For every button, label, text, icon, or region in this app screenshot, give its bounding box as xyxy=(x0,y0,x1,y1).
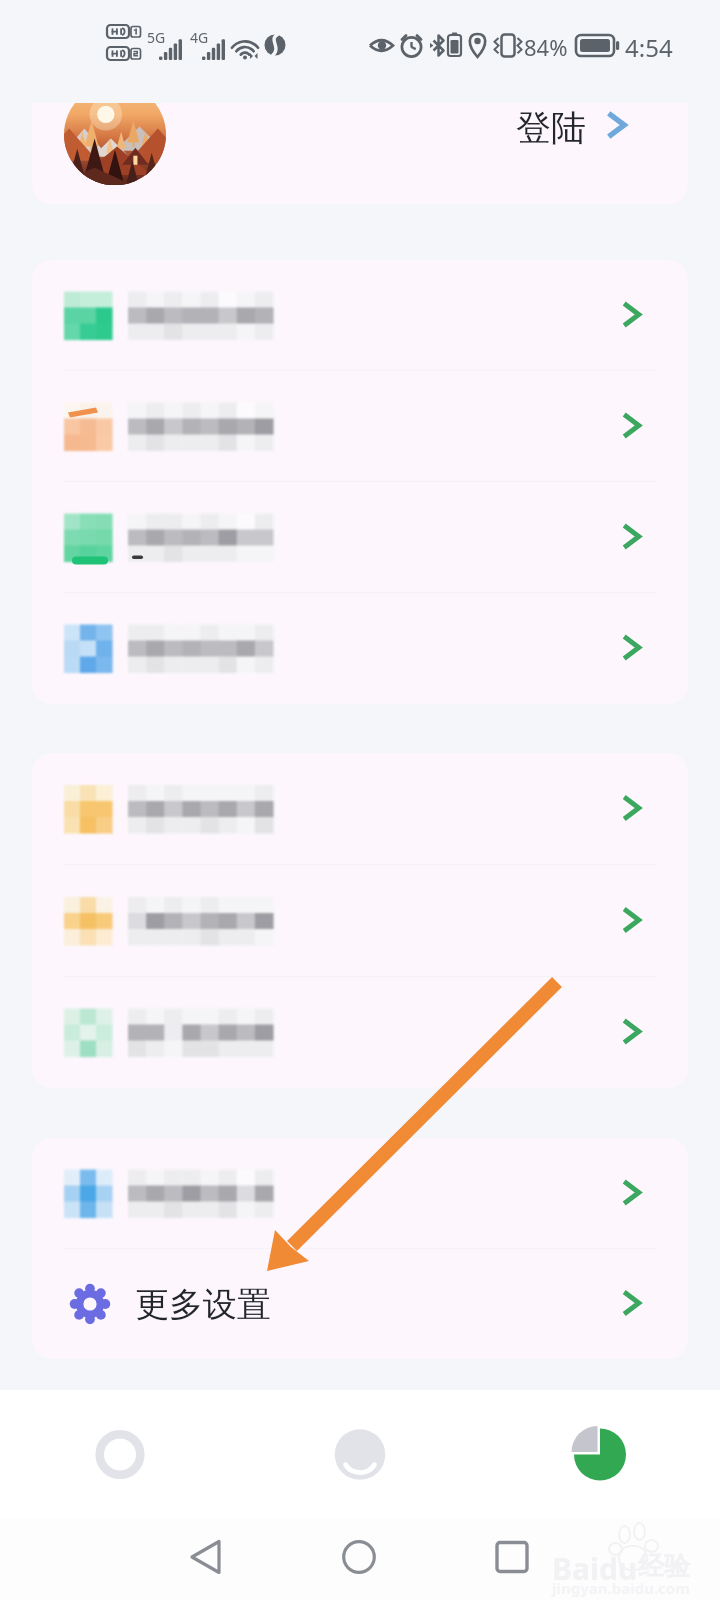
button[interactable] xyxy=(32,865,688,977)
staticText: 经验 xyxy=(638,1550,690,1583)
staticText: 登陆 xyxy=(516,106,586,150)
staticText: 84% xyxy=(524,32,568,62)
button[interactable]: 登陆 xyxy=(32,103,688,204)
staticText: jingyan.baidu.com xyxy=(552,1578,690,1598)
button[interactable] xyxy=(32,1138,688,1249)
staticText: 4G xyxy=(190,28,209,47)
staticText: 更多设置 xyxy=(135,1283,271,1326)
button[interactable]: Home xyxy=(24,1390,216,1518)
staticText: Baidu xyxy=(552,1548,638,1589)
button[interactable]: 更多设置 xyxy=(32,1249,688,1359)
button[interactable] xyxy=(32,977,688,1088)
button[interactable] xyxy=(32,260,688,371)
button[interactable] xyxy=(32,753,688,865)
button[interactable] xyxy=(32,593,688,704)
staticText: 5G xyxy=(147,28,166,47)
button[interactable] xyxy=(32,482,688,593)
staticText: 4:54 xyxy=(625,31,673,64)
button[interactable] xyxy=(32,371,688,482)
button[interactable]: Statistics xyxy=(504,1390,696,1518)
button[interactable]: Discover xyxy=(264,1390,456,1518)
